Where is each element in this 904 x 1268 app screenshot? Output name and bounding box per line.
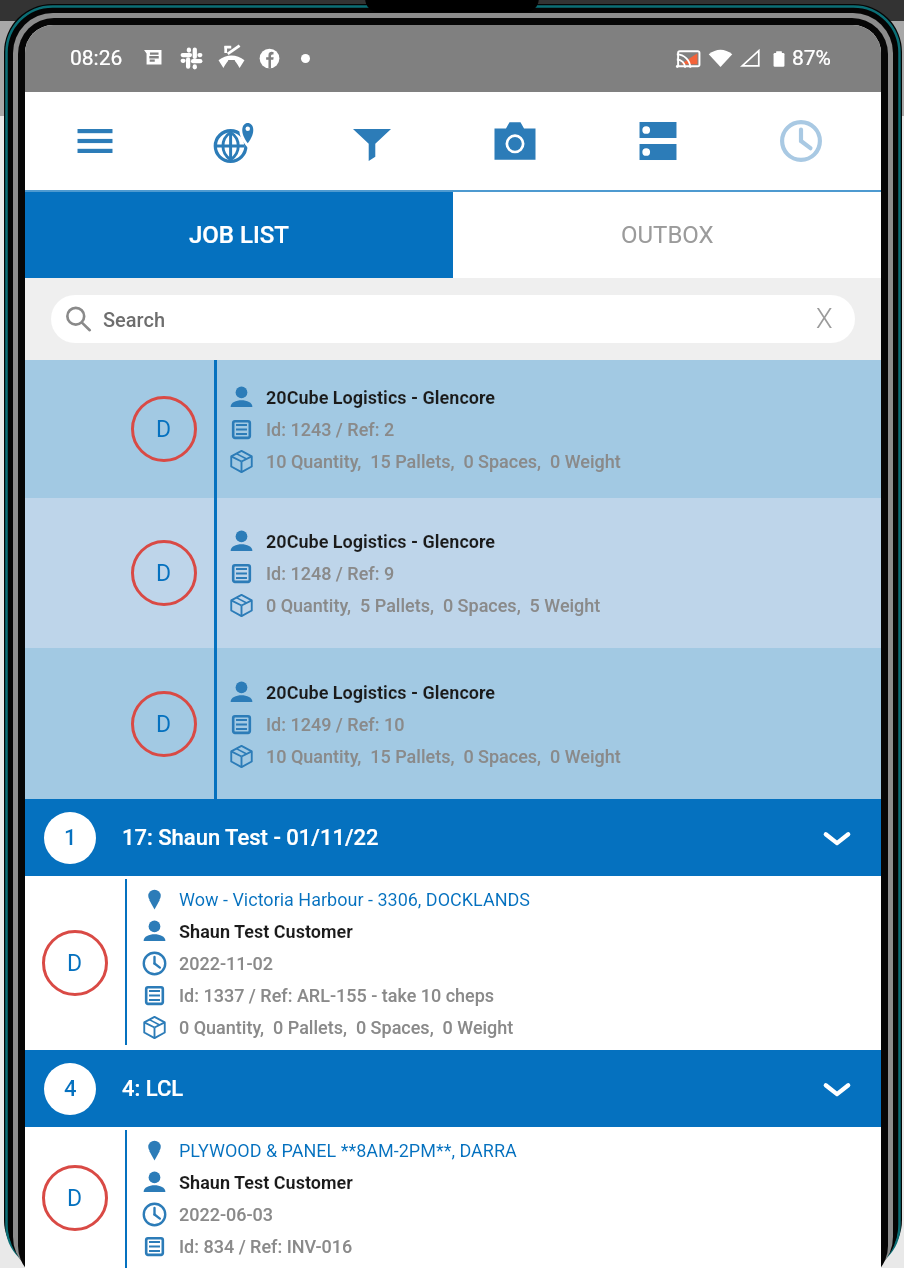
- button[interactable]: Map: [188, 92, 282, 190]
- staticText: D: [156, 711, 172, 738]
- staticText: 10 Quantity, 15 Pallets, 0 Spaces, 0 Wei…: [266, 746, 621, 767]
- staticText: 20Cube Logistics - Glencore: [266, 682, 496, 703]
- button[interactable]: JOB LIST: [25, 192, 453, 278]
- button[interactable]: List: [611, 92, 705, 190]
- staticText: D: [156, 560, 172, 587]
- staticText: Id: 1337 / Ref: ARL-155 - take 10 cheps: [179, 985, 495, 1006]
- button[interactable]: Search: [51, 295, 855, 343]
- staticText: Id: 1248 / Ref: 9: [266, 563, 395, 584]
- staticText: 2022-06-03: [179, 1204, 274, 1225]
- button[interactable]: D: [25, 360, 881, 498]
- staticText: Search: [103, 308, 816, 331]
- button[interactable]: Camera: [468, 92, 562, 190]
- button[interactable]: D: [25, 1127, 881, 1268]
- button[interactable]: Menu: [48, 92, 142, 190]
- staticText: 0 Quantity, 0 Pallets, 0 Spaces, 0 Weigh…: [179, 1017, 514, 1038]
- staticText: 08:26: [70, 46, 123, 71]
- staticText: Shaun Test Customer: [179, 1172, 353, 1193]
- staticText: 4: LCL: [122, 1076, 820, 1102]
- staticText: 2022-11-02: [179, 953, 274, 974]
- staticText: D: [67, 950, 83, 977]
- staticText: Shaun Test Customer: [179, 921, 353, 942]
- button[interactable]: D: [25, 876, 881, 1050]
- staticText: 17: Shaun Test - 01/11/22: [122, 825, 820, 851]
- button[interactable]: OUTBOX: [453, 192, 881, 278]
- button[interactable]: 1: [25, 799, 881, 876]
- staticText: D: [67, 1185, 83, 1212]
- staticText: OUTBOX: [621, 221, 714, 249]
- staticText: JOB LIST: [189, 221, 289, 249]
- staticText: Wow - Victoria Harbour - 3306, DOCKLANDS: [179, 889, 531, 910]
- button[interactable]: Filter: [325, 92, 419, 190]
- staticText: 1: [64, 825, 77, 851]
- staticText: 4: [64, 1076, 77, 1102]
- staticText: Id: 834 / Ref: INV-016: [179, 1236, 353, 1257]
- button[interactable]: D: [25, 498, 881, 648]
- staticText: X: [816, 303, 833, 335]
- button[interactable]: 4: [25, 1050, 881, 1127]
- staticText: 87%: [792, 46, 831, 71]
- staticText: D: [156, 416, 172, 443]
- staticText: 0 Quantity, 5 Pallets, 0 Spaces, 5 Weigh…: [266, 595, 601, 616]
- button[interactable]: D: [25, 648, 881, 799]
- staticText: Id: 1243 / Ref: 2: [266, 419, 395, 440]
- button[interactable]: History: [754, 92, 848, 190]
- staticText: Id: 1249 / Ref: 10: [266, 714, 405, 735]
- staticText: 10 Quantity, 15 Pallets, 0 Spaces, 0 Wei…: [266, 451, 621, 472]
- staticText: 20Cube Logistics - Glencore: [266, 531, 496, 552]
- staticText: 20Cube Logistics - Glencore: [266, 387, 496, 408]
- staticText: PLYWOOD & PANEL **8AM-2PM**, DARRA: [179, 1140, 517, 1161]
